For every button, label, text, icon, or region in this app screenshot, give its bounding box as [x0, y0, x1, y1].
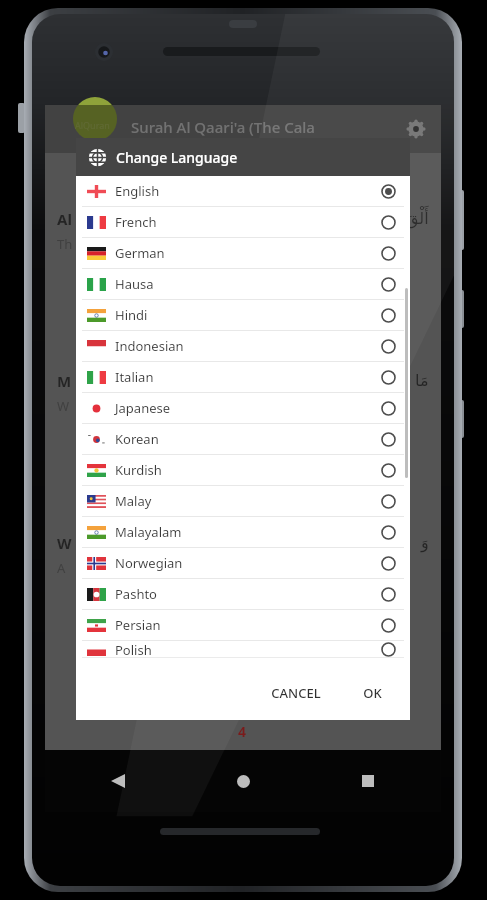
staticText: Norwegian — [115, 554, 183, 572]
staticText: 4 — [238, 722, 247, 741]
button[interactable]: Korean — [76, 424, 410, 455]
staticText: Th — [57, 235, 73, 253]
button[interactable]: Polish — [76, 641, 410, 658]
staticText: German — [115, 244, 165, 262]
staticText: OK — [363, 684, 382, 702]
staticText: English — [115, 182, 160, 200]
staticText: Persian — [115, 616, 161, 634]
staticText: Al — [57, 209, 72, 229]
staticText: Malayalam — [115, 523, 182, 541]
button[interactable]: Pashto — [76, 579, 410, 610]
button[interactable]: Indonesian — [76, 331, 410, 362]
staticText: CANCEL — [271, 684, 321, 702]
staticText: Hindi — [115, 306, 148, 324]
staticText: AlQuran — [75, 119, 110, 131]
staticText: Hausa — [115, 275, 154, 293]
button[interactable]: OK — [353, 676, 392, 710]
button[interactable]: German — [76, 238, 410, 269]
staticText: Surah Al Qaari'a (The Cala — [131, 117, 315, 137]
staticText: French — [115, 213, 157, 231]
button[interactable]: Hindi — [76, 300, 410, 331]
button[interactable]: Hausa — [76, 269, 410, 300]
button[interactable]: English — [76, 176, 410, 207]
staticText: M — [57, 371, 72, 391]
button[interactable]: CANCEL — [261, 676, 331, 710]
button[interactable]: Italian — [76, 362, 410, 393]
staticText: Pashto — [115, 585, 157, 603]
staticText: Kurdish — [115, 461, 162, 479]
staticText: Polish — [115, 641, 152, 657]
button[interactable]: Recent apps — [351, 764, 385, 798]
staticText: Japanese — [115, 399, 171, 417]
staticText: W — [57, 397, 70, 415]
button[interactable]: Home — [226, 764, 260, 798]
staticText: Italian — [115, 368, 154, 386]
button[interactable]: Back — [101, 764, 135, 798]
staticText: Indonesian — [115, 337, 184, 355]
button[interactable]: Malay — [76, 486, 410, 517]
staticText: Change Language — [116, 148, 238, 167]
staticText: مَا — [415, 371, 429, 390]
button[interactable]: Kurdish — [76, 455, 410, 486]
button[interactable]: Norwegian — [76, 548, 410, 579]
button[interactable]: Japanese — [76, 393, 410, 424]
button[interactable]: French — [76, 207, 410, 238]
staticText: أَلْقَ — [406, 209, 429, 228]
staticText: وَ — [421, 533, 429, 552]
staticText: A — [57, 559, 66, 577]
staticText: W — [57, 533, 72, 553]
button[interactable]: Persian — [76, 610, 410, 641]
staticText: Korean — [115, 430, 159, 448]
staticText: Malay — [115, 492, 152, 510]
button[interactable]: Malayalam — [76, 517, 410, 548]
button[interactable]: Settings — [401, 114, 431, 144]
